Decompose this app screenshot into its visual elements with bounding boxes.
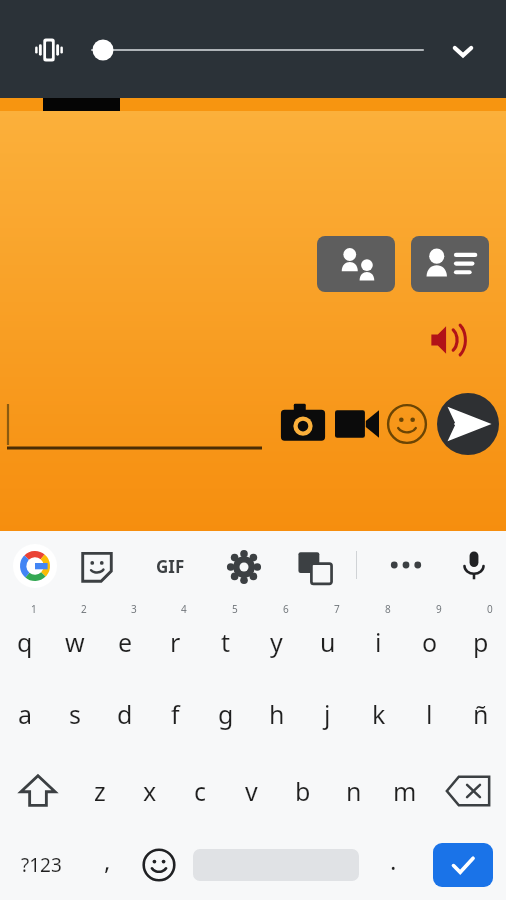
staticText: n xyxy=(346,774,362,808)
button[interactable]: ?123 xyxy=(0,829,82,900)
button[interactable]: Record video xyxy=(335,406,379,442)
button[interactable]: 8 xyxy=(353,598,404,675)
button[interactable]: More options xyxy=(385,551,427,579)
staticText: 6 xyxy=(283,602,289,616)
staticText: w xyxy=(65,625,85,659)
staticText: k xyxy=(372,697,386,731)
button[interactable]: Backspace xyxy=(430,752,506,829)
staticText: d xyxy=(117,697,133,731)
button[interactable]: Speaker xyxy=(424,317,470,363)
staticText: a xyxy=(18,697,33,731)
button[interactable]: Emoji xyxy=(133,829,184,900)
staticText: z xyxy=(94,774,106,808)
button[interactable]: j xyxy=(302,675,353,752)
button[interactable]: 1 xyxy=(0,598,50,675)
staticText: 7 xyxy=(334,602,340,616)
staticText: . xyxy=(390,844,397,877)
button[interactable]: Contact details xyxy=(411,236,489,292)
button[interactable]: b xyxy=(277,752,328,829)
staticText: u xyxy=(320,625,336,659)
staticText: 2 xyxy=(81,602,87,616)
button[interactable]: Keyboard settings xyxy=(226,549,262,585)
staticText: r xyxy=(170,625,181,659)
button[interactable]: Enter xyxy=(419,829,506,900)
button[interactable]: k xyxy=(353,675,404,752)
staticText: t xyxy=(221,625,231,659)
button[interactable]: 7 xyxy=(302,598,353,675)
staticText: s xyxy=(69,697,81,731)
button[interactable]: Space xyxy=(184,829,368,900)
staticText: e xyxy=(118,625,133,659)
button[interactable]: Send xyxy=(437,393,499,455)
button[interactable]: d xyxy=(100,675,150,752)
staticText: l xyxy=(426,697,433,731)
button[interactable]: GIF xyxy=(146,549,194,583)
button[interactable]: Translate xyxy=(297,550,333,586)
button[interactable]: Ringer mode vibrate xyxy=(30,31,68,69)
staticText: 8 xyxy=(385,602,391,616)
staticText: o xyxy=(422,625,438,659)
button[interactable]: s xyxy=(50,675,100,752)
staticText: GIF xyxy=(156,555,185,578)
button[interactable]: Expand volume controls xyxy=(446,34,480,68)
staticText: f xyxy=(171,697,180,731)
staticText: 5 xyxy=(232,602,238,616)
button[interactable]: x xyxy=(125,752,175,829)
button[interactable]: Google search xyxy=(13,544,57,588)
button[interactable]: c xyxy=(175,752,226,829)
button[interactable]: Take photo xyxy=(280,403,326,445)
button[interactable]: h xyxy=(251,675,302,752)
button[interactable]: m xyxy=(379,752,430,829)
staticText: i xyxy=(375,625,382,659)
button[interactable]: 5 xyxy=(200,598,251,675)
button[interactable]: 6 xyxy=(251,598,302,675)
button[interactable]: 0 xyxy=(455,598,506,675)
staticText: 9 xyxy=(436,602,442,616)
staticText: h xyxy=(269,697,285,731)
button[interactable]: . xyxy=(368,829,419,900)
staticText: ?123 xyxy=(21,852,62,878)
staticText: y xyxy=(270,625,283,659)
button[interactable]: Shift xyxy=(0,752,75,829)
button[interactable]: , xyxy=(82,829,133,900)
staticText: m xyxy=(393,774,417,808)
button[interactable]: g xyxy=(200,675,251,752)
staticText: c xyxy=(194,774,207,808)
button[interactable]: n xyxy=(328,752,379,829)
button[interactable]: Volume slider xyxy=(82,30,427,70)
staticText: p xyxy=(473,625,489,659)
button[interactable]: f xyxy=(150,675,200,752)
button[interactable]: a xyxy=(0,675,50,752)
button[interactable]: 3 xyxy=(100,598,150,675)
button[interactable]: v xyxy=(226,752,277,829)
staticText: , xyxy=(104,844,111,877)
staticText: ñ xyxy=(473,697,489,731)
button[interactable]: z xyxy=(75,752,125,829)
button[interactable]: Voice input xyxy=(457,548,491,582)
staticText: j xyxy=(324,697,331,731)
staticText: g xyxy=(218,697,234,731)
button[interactable]: Stickers xyxy=(80,550,114,584)
button[interactable]: 9 xyxy=(404,598,455,675)
staticText: 3 xyxy=(131,602,137,616)
staticText: v xyxy=(245,774,258,808)
button[interactable]: ñ xyxy=(455,675,506,752)
staticText: 1 xyxy=(31,602,37,616)
button[interactable]: Group members xyxy=(317,236,395,292)
staticText: q xyxy=(17,625,33,659)
button[interactable]: l xyxy=(404,675,455,752)
staticText: b xyxy=(295,774,311,808)
staticText: x xyxy=(143,774,157,808)
staticText: 4 xyxy=(181,602,187,616)
button[interactable]: 2 xyxy=(50,598,100,675)
button[interactable]: Emoji xyxy=(386,403,428,445)
staticText: 0 xyxy=(487,602,493,616)
button[interactable]: 4 xyxy=(150,598,200,675)
